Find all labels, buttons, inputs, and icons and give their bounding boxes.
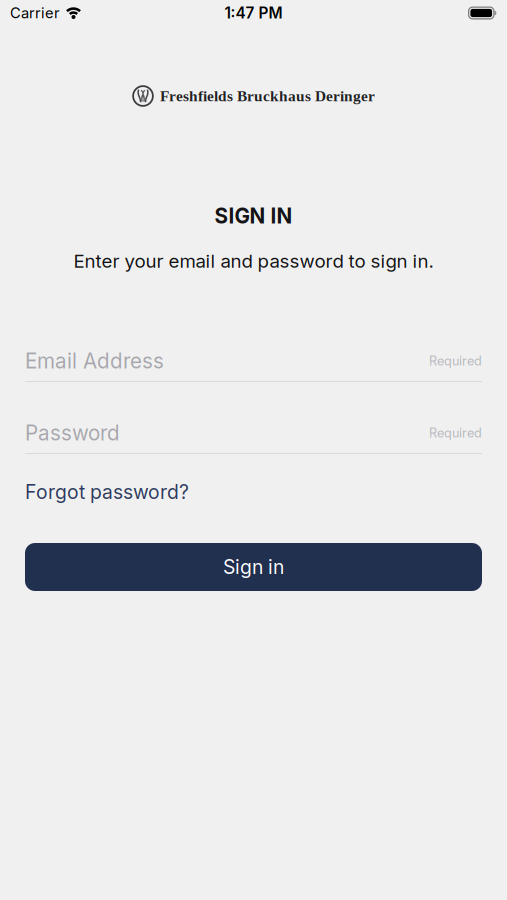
staticText: Password [25, 420, 120, 445]
staticText: Sign in [223, 555, 284, 579]
staticText: 1:47 PM [224, 4, 282, 22]
button[interactable]: Sign in [25, 543, 482, 591]
button[interactable]: Forgot password? [25, 480, 189, 504]
staticText: Freshfields Bruckhaus Deringer [160, 87, 375, 104]
button[interactable]: Email Address [0, 350, 507, 382]
staticText: Forgot password? [25, 480, 189, 504]
staticText: Required [429, 425, 482, 441]
staticText: Enter your email and password to sign in… [73, 250, 433, 272]
button[interactable]: Password [0, 422, 507, 454]
staticText: Carrier [10, 4, 60, 22]
staticText: Required [429, 353, 482, 369]
staticText: SIGN IN [214, 203, 292, 228]
staticText: Email Address [25, 348, 164, 373]
